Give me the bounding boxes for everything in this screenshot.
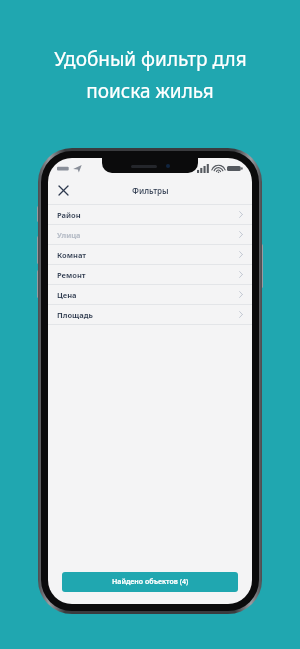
- staticText: Ремонт: [57, 270, 86, 280]
- staticText: поиска жилья: [86, 78, 214, 104]
- staticText: Найдено объектов (4): [112, 577, 189, 587]
- button[interactable]: Цена: [48, 285, 252, 304]
- button[interactable]: Площадь: [48, 305, 252, 324]
- staticText: Цена: [57, 290, 77, 300]
- button[interactable]: Ремонт: [48, 265, 252, 284]
- staticText: Улица: [57, 230, 81, 240]
- button[interactable]: Район: [48, 205, 252, 224]
- button[interactable]: Комнат: [48, 245, 252, 264]
- staticText: Площадь: [57, 310, 93, 320]
- staticText: Район: [57, 210, 81, 220]
- button[interactable]: Найдено объектов (4): [62, 572, 238, 592]
- button[interactable]: Улица: [48, 225, 252, 244]
- staticText: Удобный фильтр для: [54, 46, 247, 72]
- staticText: Фильтры: [132, 185, 169, 196]
- button[interactable]: Close: [52, 179, 74, 201]
- staticText: Комнат: [57, 250, 87, 260]
